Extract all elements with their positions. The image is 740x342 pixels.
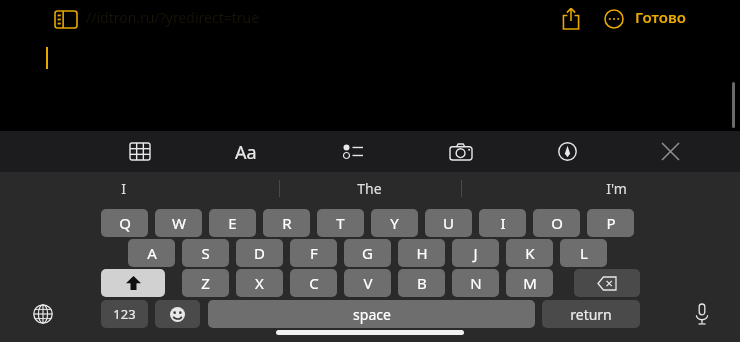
staticText: W [172, 213, 186, 233]
staticText: R [282, 213, 292, 233]
button[interactable]: I [0, 172, 246, 205]
button[interactable]: V [344, 269, 391, 297]
staticText: V [363, 273, 373, 293]
staticText: M [523, 273, 537, 293]
staticText: Z [201, 273, 210, 293]
button[interactable]: E [209, 209, 256, 237]
staticText: N [470, 273, 482, 293]
staticText: The [357, 179, 382, 198]
button[interactable]: T [317, 209, 364, 237]
button[interactable]: O [533, 209, 580, 237]
button[interactable]: 123 [101, 300, 148, 328]
staticText: U [443, 213, 454, 233]
button[interactable]: A [128, 239, 175, 267]
button[interactable]: D [236, 239, 283, 267]
staticText: Готово [635, 7, 686, 27]
button[interactable]: I [479, 209, 526, 237]
button[interactable]: R [263, 209, 310, 237]
button[interactable]: C [290, 269, 337, 297]
button[interactable]: S [182, 239, 229, 267]
button[interactable]: B [398, 269, 445, 297]
button[interactable]: Switch keyboard language [25, 300, 61, 328]
button[interactable]: F [290, 239, 337, 267]
staticText: I'm [606, 179, 627, 198]
staticText: O [551, 213, 563, 233]
button[interactable]: M [506, 269, 553, 297]
staticText: Q [119, 213, 131, 233]
button[interactable]: Text format [228, 137, 264, 167]
button[interactable]: K [506, 239, 553, 267]
button[interactable]: Table [125, 136, 155, 166]
staticText: A [147, 243, 157, 263]
button[interactable]: Checklist [338, 136, 368, 166]
button[interactable]: H [398, 239, 445, 267]
button[interactable]: Q [101, 209, 148, 237]
button[interactable]: L [560, 239, 607, 267]
button[interactable]: Delete [574, 269, 640, 297]
button[interactable]: Camera [446, 136, 476, 166]
staticText: X [255, 273, 264, 293]
button[interactable]: Y [371, 209, 418, 237]
staticText: D [254, 243, 265, 263]
staticText: H [416, 243, 428, 263]
staticText: G [362, 243, 373, 263]
button[interactable]: Close keyboard [655, 136, 685, 166]
button[interactable]: Shift [101, 269, 165, 297]
staticText: J [473, 243, 478, 263]
staticText: Aa [235, 140, 257, 165]
staticText: T [336, 213, 345, 233]
button[interactable]: Show folders sidebar [52, 7, 80, 31]
staticText: I [121, 179, 126, 198]
button[interactable]: Emoji [155, 300, 200, 328]
staticText: return [570, 305, 612, 324]
staticText: F [310, 243, 318, 263]
staticText: S [201, 243, 210, 263]
staticText: I [500, 213, 506, 233]
button[interactable]: U [425, 209, 472, 237]
staticText: 123 [113, 305, 136, 323]
button[interactable]: N [452, 269, 499, 297]
staticText: E [228, 213, 237, 233]
staticText: L [580, 243, 588, 263]
button[interactable]: Dictate [684, 300, 720, 328]
button[interactable]: Z [182, 269, 229, 297]
staticText: space [353, 305, 391, 324]
button[interactable]: space [208, 300, 535, 328]
button[interactable]: Share [557, 4, 585, 32]
button[interactable]: Markup [552, 136, 582, 166]
button[interactable]: The [246, 172, 493, 205]
staticText: P [606, 213, 616, 233]
button[interactable]: J [452, 239, 499, 267]
staticText: K [525, 243, 535, 263]
staticText: B [417, 273, 427, 293]
staticText: Y [390, 213, 399, 233]
button[interactable]: G [344, 239, 391, 267]
button[interactable]: More options [600, 5, 628, 33]
button[interactable]: return [542, 300, 640, 328]
button[interactable]: I'm [493, 172, 740, 205]
button[interactable]: W [155, 209, 202, 237]
button[interactable]: Готово [633, 5, 688, 29]
button[interactable]: X [236, 269, 283, 297]
staticText: C [309, 273, 319, 293]
staticText: //idtron.ru/?yredirect=true [86, 8, 260, 27]
button[interactable]: P [587, 209, 634, 237]
